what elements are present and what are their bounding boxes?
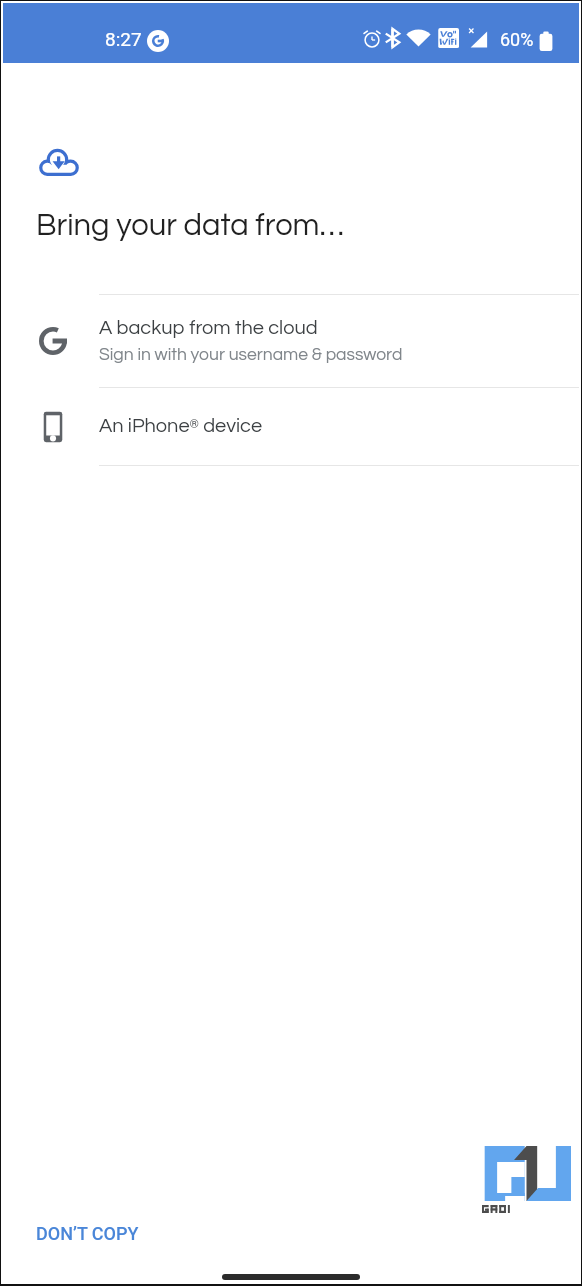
- button[interactable]: DON’T COPY: [29, 1218, 146, 1249]
- staticText: 8:27: [105, 28, 142, 50]
- button[interactable]: An iPhone® device: [3, 388, 579, 465]
- staticText: An iPhone® device: [99, 416, 263, 437]
- staticText: DON’T COPY: [36, 1223, 139, 1244]
- button[interactable]: A backup from the cloud: [3, 295, 579, 387]
- staticText: Sign in with your username & password: [99, 346, 403, 364]
- staticText: A backup from the cloud: [99, 318, 318, 339]
- staticText: 60%: [500, 29, 534, 50]
- staticText: Bring your data from…: [36, 210, 344, 242]
